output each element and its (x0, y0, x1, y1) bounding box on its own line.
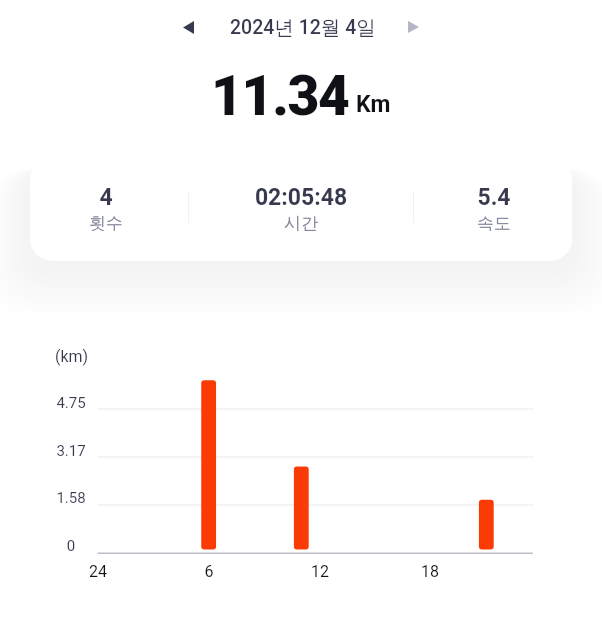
staticText: 횟수 (46, 213, 166, 234)
staticText: 2024년 12월 4일 (230, 15, 376, 40)
staticText: Km (356, 91, 391, 118)
staticText: 3.17 (41, 442, 101, 460)
staticText: 12 (290, 562, 350, 581)
staticText: 4 (46, 184, 166, 211)
staticText: 0 (41, 537, 101, 555)
button[interactable]: 5.4 (434, 184, 554, 234)
staticText: 5.4 (434, 184, 554, 211)
staticText: 1.58 (41, 489, 101, 507)
staticText: 11.34 (211, 64, 349, 128)
staticText: (km) (55, 347, 89, 366)
button[interactable]: 02:05:48 (241, 184, 361, 234)
staticText: 24 (68, 562, 128, 581)
staticText: 02:05:48 (241, 184, 361, 211)
button[interactable]: Next day (390, 9, 436, 45)
staticText: 시간 (241, 213, 361, 234)
staticText: 6 (179, 562, 239, 581)
staticText: 4.75 (41, 394, 101, 412)
button[interactable]: 4 (46, 184, 166, 234)
staticText: 18 (400, 562, 460, 581)
button[interactable]: Previous day (165, 9, 211, 45)
staticText: 속도 (434, 213, 554, 234)
